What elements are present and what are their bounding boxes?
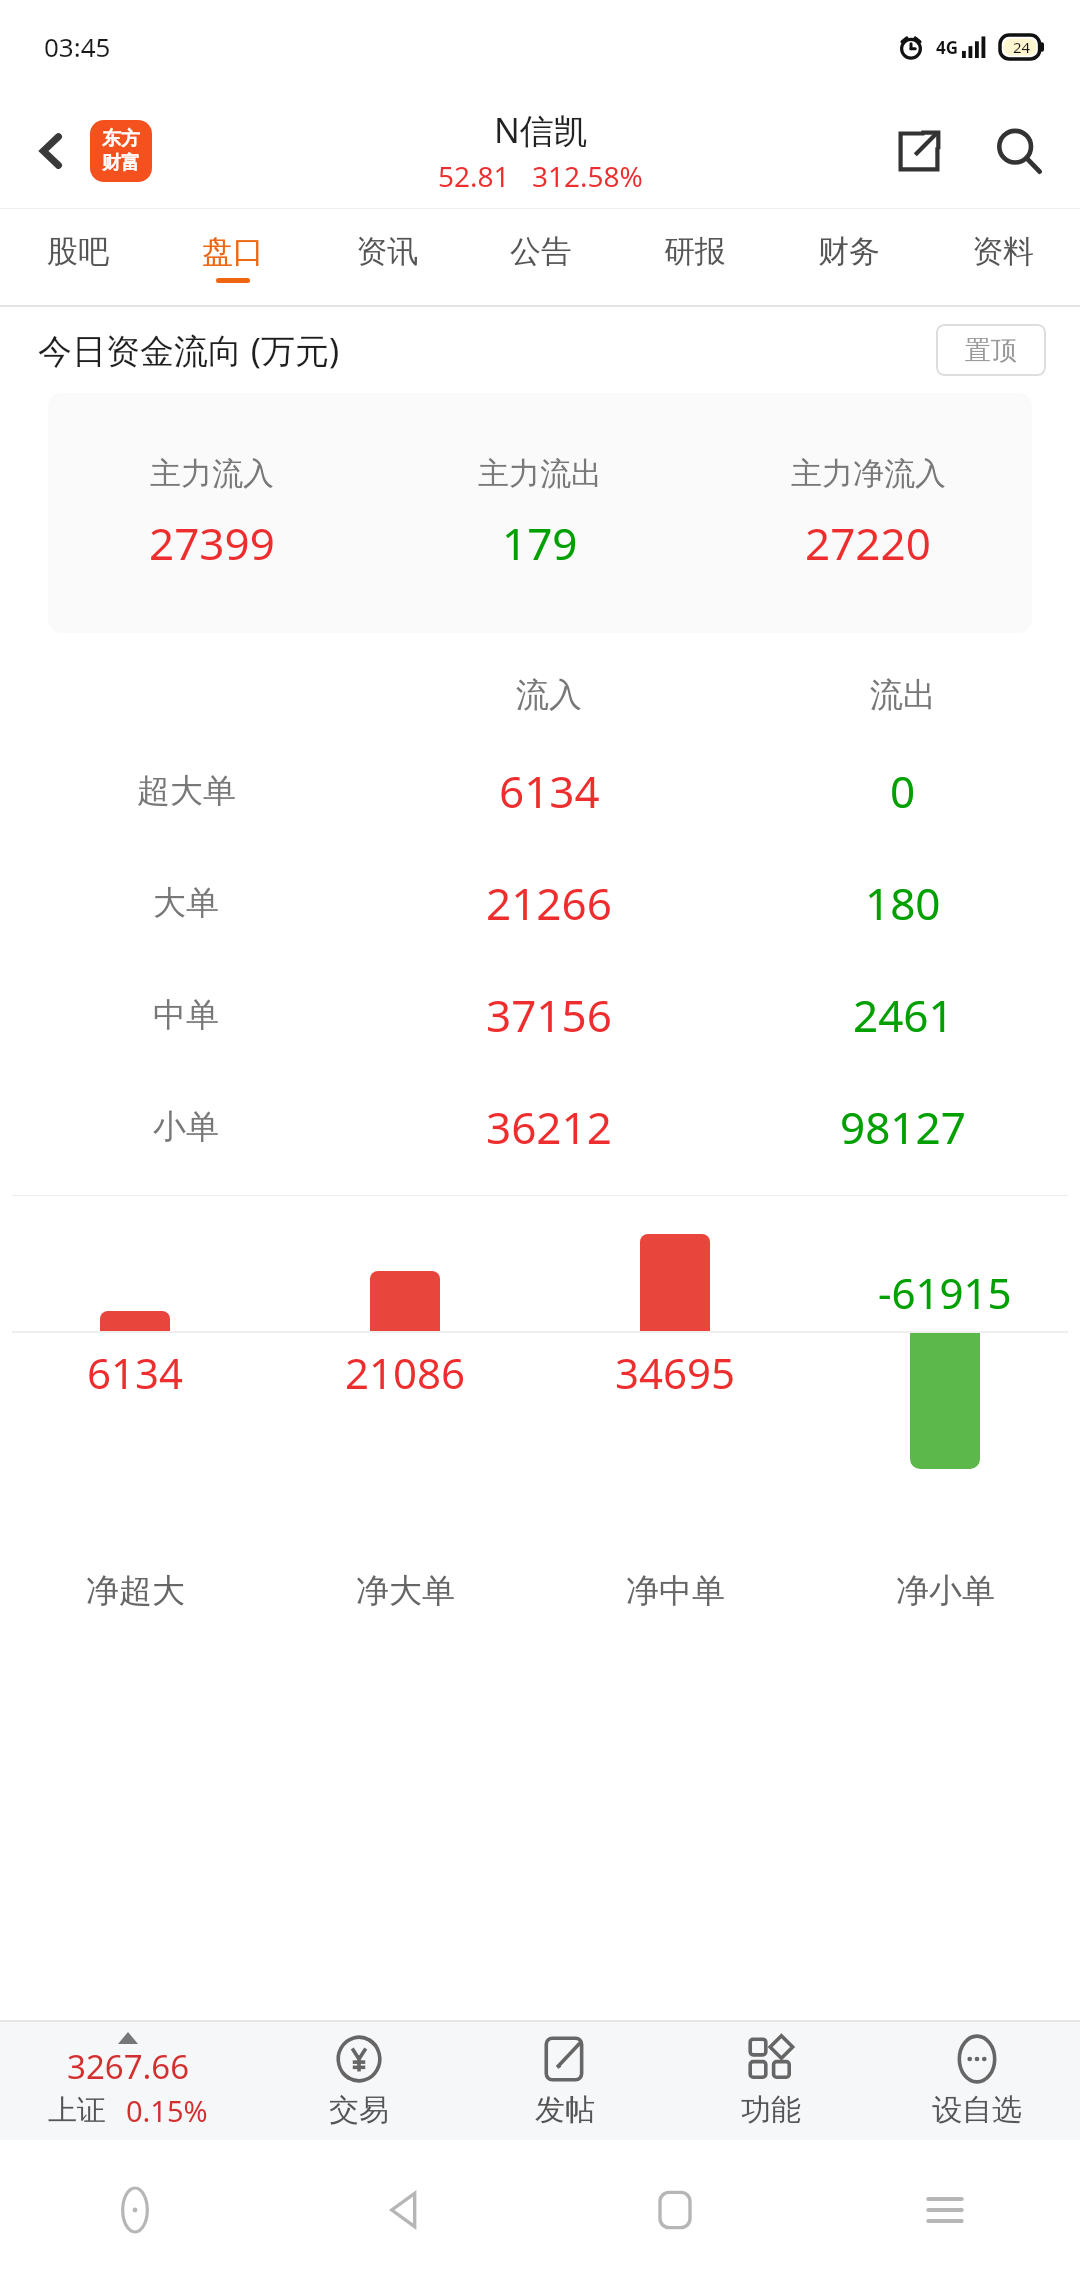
staticText: 0	[890, 761, 916, 821]
staticText: 超大单	[137, 770, 236, 812]
staticText: 0.15%	[126, 2091, 208, 2130]
staticText: 上证	[48, 2092, 106, 2129]
staticText: 主力净流入	[791, 454, 946, 493]
staticText: 180	[865, 873, 941, 933]
staticText: 发帖	[535, 2091, 595, 2129]
staticText: 盘口	[202, 232, 264, 271]
button[interactable]: 股吧	[0, 209, 155, 305]
staticText: 功能	[741, 2091, 801, 2129]
staticText: 21266	[486, 873, 612, 933]
staticText: 179	[502, 513, 578, 573]
staticText: 37156	[486, 985, 612, 1045]
staticText: 3267.66	[67, 2044, 190, 2089]
staticText: 34695	[615, 1344, 736, 1401]
staticText: 52.81	[438, 157, 510, 195]
button[interactable]: 置顶	[936, 324, 1046, 376]
staticText: 小单	[153, 1106, 219, 1148]
staticText: 中单	[153, 994, 219, 1036]
staticText: -61915	[878, 1264, 1012, 1321]
staticText: 资讯	[356, 232, 418, 271]
button[interactable]: 3267.66	[0, 2022, 256, 2140]
staticText: 03:45	[44, 29, 111, 64]
staticText: 4G	[936, 36, 959, 59]
staticText: 研报	[664, 232, 726, 271]
staticText: 流出	[870, 674, 936, 716]
staticText: 置顶	[965, 334, 1017, 367]
button[interactable]: Share	[882, 114, 956, 188]
staticText: 27399	[149, 513, 275, 573]
staticText: 今日资金流向 (万元)	[38, 327, 340, 373]
button[interactable]: 大单	[0, 847, 1080, 959]
button[interactable]: 资料	[926, 209, 1080, 305]
staticText: 股吧	[47, 232, 109, 271]
button[interactable]: Menu	[810, 2140, 1080, 2280]
button[interactable]: Search	[982, 114, 1056, 188]
staticText: 流入	[516, 674, 582, 716]
staticText: 98127	[840, 1097, 966, 1157]
staticText: 21086	[345, 1344, 466, 1401]
staticText: 交易	[329, 2091, 389, 2129]
button[interactable]: 财务	[772, 209, 926, 305]
staticText: 东方	[102, 127, 140, 151]
staticText: 6134	[87, 1344, 184, 1401]
staticText: 设自选	[932, 2091, 1022, 2129]
staticText: 净中单	[626, 1570, 725, 1612]
button[interactable]: 发帖	[462, 2022, 668, 2140]
staticText: 净超大	[86, 1570, 185, 1612]
button[interactable]: 交易	[256, 2022, 462, 2140]
staticText: 27220	[805, 513, 931, 573]
button[interactable]: 研报	[618, 209, 772, 305]
staticText: 主力流出	[478, 454, 602, 493]
staticText: 净小单	[896, 1570, 995, 1612]
staticText: 净大单	[356, 1570, 455, 1612]
staticText: 大单	[153, 882, 219, 924]
staticText: 2461	[853, 985, 954, 1045]
button[interactable]: 超大单	[0, 735, 1080, 847]
button[interactable]: 盘口	[155, 209, 310, 305]
staticText: 财务	[818, 232, 880, 271]
button[interactable]: 功能	[668, 2022, 874, 2140]
button[interactable]: 东方财富	[90, 120, 152, 182]
button[interactable]: 公告	[464, 209, 618, 305]
button[interactable]: 中单	[0, 959, 1080, 1071]
button[interactable]: 主力流入	[48, 393, 1032, 633]
button[interactable]: 小单	[0, 1071, 1080, 1183]
staticText: N信凯	[494, 107, 588, 153]
staticText: 公告	[510, 232, 572, 271]
staticText: 资料	[972, 232, 1034, 271]
staticText: 36212	[486, 1097, 612, 1157]
staticText: 主力流入	[150, 454, 274, 493]
button[interactable]: Home	[540, 2140, 810, 2280]
button[interactable]: 资讯	[310, 209, 464, 305]
button[interactable]: Back	[270, 2140, 540, 2280]
staticText: 24	[1013, 37, 1031, 57]
staticText: 财富	[102, 151, 140, 175]
staticText: 312.58%	[532, 157, 643, 195]
button[interactable]: Assistant	[0, 2140, 270, 2280]
button[interactable]: Back	[22, 121, 82, 181]
staticText: 6134	[499, 761, 600, 821]
button[interactable]: 设自选	[874, 2022, 1080, 2140]
